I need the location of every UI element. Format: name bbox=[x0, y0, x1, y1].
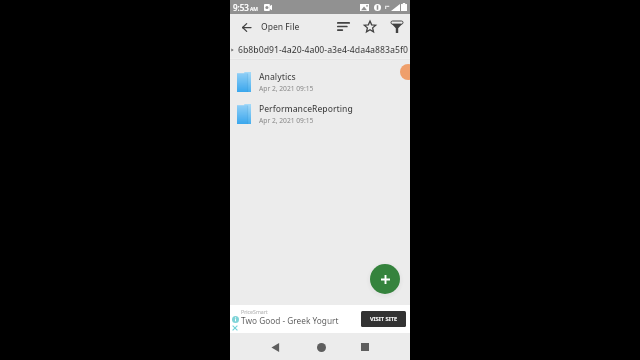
staticText: 6b8b0d91-4a20-4a00-a3e4-4da4a883a5f0 bbox=[238, 44, 408, 56]
button[interactable]: Favorite bbox=[361, 18, 378, 35]
staticText: Open File bbox=[261, 21, 300, 33]
staticText: VISIT SITE bbox=[370, 315, 398, 323]
staticText: PriceSmart bbox=[241, 308, 268, 315]
button[interactable]: VISIT SITE bbox=[361, 311, 406, 327]
staticText: AM bbox=[250, 6, 258, 13]
staticText: PerformanceReporting bbox=[259, 103, 353, 115]
button[interactable]: Add bbox=[370, 264, 400, 294]
button[interactable]: Back bbox=[239, 20, 253, 34]
staticText: 9:53 bbox=[233, 2, 249, 13]
button[interactable]: Back bbox=[266, 338, 284, 356]
staticText: Apr 2, 2021 09:15 bbox=[259, 116, 314, 125]
staticText: Analytics bbox=[259, 71, 296, 83]
staticText: Apr 2, 2021 09:15 bbox=[259, 84, 314, 93]
button[interactable]: Home bbox=[312, 338, 330, 356]
button[interactable]: Filter bbox=[388, 18, 405, 35]
button[interactable]: Sort bbox=[335, 18, 352, 35]
button[interactable]: Analytics bbox=[230, 66, 410, 98]
staticText: Two Good - Greek Yogurt bbox=[241, 315, 339, 326]
button[interactable]: PerformanceReporting bbox=[230, 98, 410, 130]
button[interactable]: Recents bbox=[356, 338, 374, 356]
